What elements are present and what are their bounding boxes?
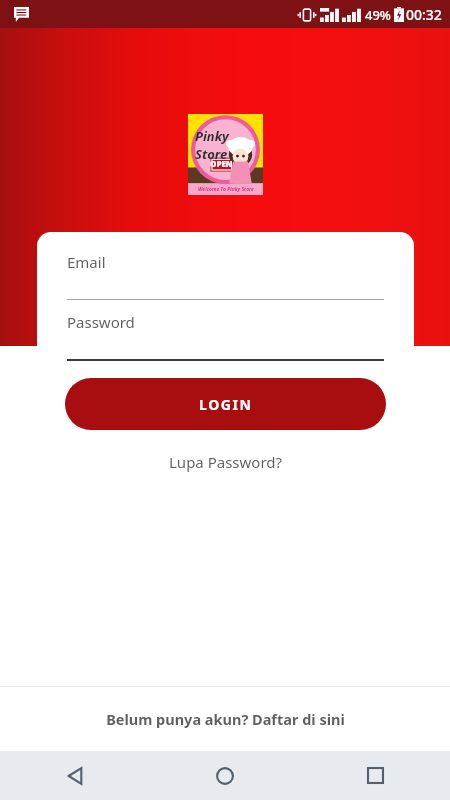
staticText: 00:32 — [406, 5, 442, 24]
button[interactable]: Recent apps — [300, 751, 450, 800]
staticText: OPEN — [210, 158, 233, 169]
staticText: Lupa Password? — [169, 452, 283, 472]
staticText: 49% — [365, 6, 391, 24]
staticText: LOGIN — [199, 395, 253, 414]
button[interactable]: Password — [37, 312, 414, 361]
button[interactable]: Back — [0, 751, 150, 800]
staticText: Welcome To Pinky Store — [198, 186, 254, 193]
button[interactable]: LOGIN — [65, 378, 386, 430]
staticText: Email — [67, 252, 106, 272]
button[interactable]: Lupa Password? — [37, 444, 414, 480]
button[interactable]: Email — [37, 252, 414, 300]
button[interactable]: Belum punya akun? Daftar di sini — [0, 687, 450, 751]
staticText: Password — [67, 312, 135, 332]
button[interactable]: Home — [150, 751, 300, 800]
staticText: Belum punya akun? Daftar di sini — [106, 709, 345, 729]
staticText: Pinky — [195, 127, 229, 145]
staticText: Store — [195, 145, 228, 163]
